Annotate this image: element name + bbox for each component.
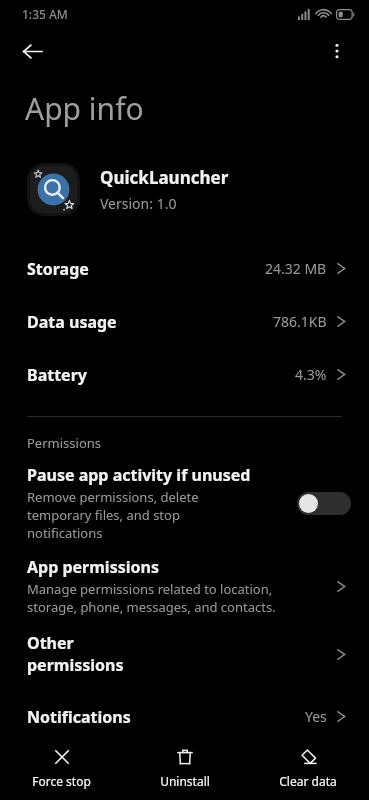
staticText: Force stop	[32, 773, 91, 789]
button[interactable]: App permissions	[0, 550, 369, 622]
button[interactable]: Clear data	[246, 740, 369, 795]
button[interactable]: More options	[315, 29, 359, 73]
button[interactable]: Data usage	[0, 295, 369, 348]
staticText: Battery	[27, 364, 295, 386]
button[interactable]: Force stop	[0, 740, 123, 795]
button[interactable]: Pause app activity if unused	[0, 462, 369, 546]
staticText: 786.1KB	[273, 312, 327, 331]
staticText: Clear data	[279, 773, 337, 789]
button[interactable]: Notifications	[0, 690, 369, 743]
button[interactable]: Pause app activity if unused toggle	[297, 492, 351, 515]
staticText: Manage permissions related to location, …	[27, 580, 276, 616]
button[interactable]: Battery	[0, 348, 369, 401]
button[interactable]: Uninstall	[123, 740, 246, 795]
staticText: Other permissions	[27, 632, 336, 676]
staticText: Permissions	[27, 434, 102, 452]
staticText: App info	[25, 88, 144, 129]
staticText: Version: 1.0	[100, 194, 177, 213]
staticText: QuickLauncher	[100, 166, 229, 189]
staticText: App permissions	[27, 556, 159, 578]
staticText: Remove permissions, delete temporary fil…	[27, 488, 199, 542]
button[interactable]: Other permissions	[0, 624, 369, 684]
button[interactable]: Back	[10, 29, 54, 73]
staticText: Data usage	[27, 311, 273, 333]
staticText: 24.32 MB	[265, 259, 327, 278]
button[interactable]: Storage	[0, 242, 369, 295]
staticText: 1:35 AM	[22, 6, 68, 22]
staticText: Storage	[27, 258, 265, 280]
staticText: 4.3%	[295, 365, 327, 384]
staticText: Yes	[305, 707, 327, 726]
staticText: Pause app activity if unused	[27, 464, 251, 486]
button[interactable]: Connections	[0, 749, 369, 800]
staticText: 2	[318, 765, 327, 784]
staticText: Connections	[27, 764, 318, 786]
button[interactable]: QuickLauncher	[0, 163, 369, 216]
staticText: Uninstall	[160, 773, 210, 789]
staticText: Notifications	[27, 706, 305, 728]
